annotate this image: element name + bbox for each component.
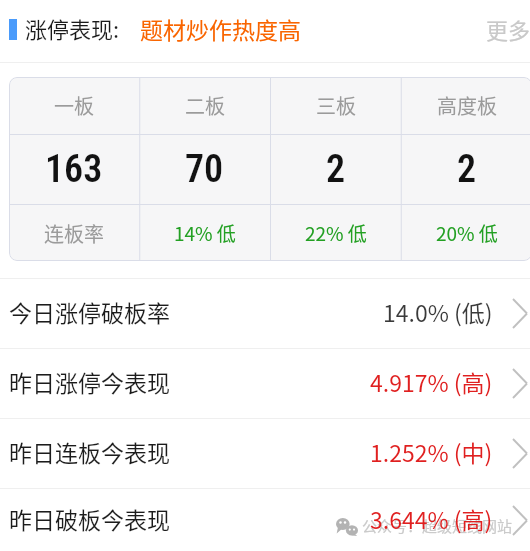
staticText: 昨日连板今表现 xyxy=(9,435,170,468)
staticText: 连板率 xyxy=(44,219,104,248)
staticText: 涨停表现: xyxy=(25,12,120,44)
staticText: 22% 低 xyxy=(305,219,367,247)
other: 查看详情 xyxy=(513,369,527,398)
staticText: 2 xyxy=(326,147,346,192)
staticText: 昨日破板今表现 xyxy=(9,502,170,535)
staticText: 70 xyxy=(185,147,224,192)
staticText: 20% 低 xyxy=(436,219,498,247)
button[interactable]: 今日涨停破板率 xyxy=(0,279,530,348)
button[interactable]: 一板 xyxy=(9,77,530,261)
staticText: 三板 xyxy=(316,91,356,120)
staticText: 高度板 xyxy=(437,91,497,120)
staticText: 昨日涨停今表现 xyxy=(9,365,170,398)
staticText: 4.917% (高) xyxy=(370,365,493,398)
button[interactable]: 更多 xyxy=(486,13,530,45)
staticText: 今日涨停破板率 xyxy=(9,295,170,328)
staticText: 更多 xyxy=(486,13,530,45)
staticText: 2 xyxy=(457,147,477,192)
other: 查看详情 xyxy=(513,439,527,468)
staticText: 二板 xyxy=(185,91,225,120)
staticText: 题材炒作热度高 xyxy=(140,12,301,45)
button[interactable]: 昨日破板今表现 xyxy=(0,489,530,551)
staticText: 一板 xyxy=(54,91,94,120)
button[interactable]: 昨日连板今表现 xyxy=(0,419,530,488)
staticText: 14.0% (低) xyxy=(383,295,493,328)
staticText: 3.644% (高) xyxy=(370,502,493,535)
other: 查看详情 xyxy=(513,299,527,328)
button[interactable]: 昨日涨停今表现 xyxy=(0,349,530,418)
other: 查看详情 xyxy=(513,506,527,535)
staticText: 163 xyxy=(45,147,103,192)
staticText: 1.252% (中) xyxy=(370,435,493,468)
staticText: 公众号：超级短线网站 xyxy=(362,515,513,537)
staticText: 14% 低 xyxy=(174,219,236,247)
